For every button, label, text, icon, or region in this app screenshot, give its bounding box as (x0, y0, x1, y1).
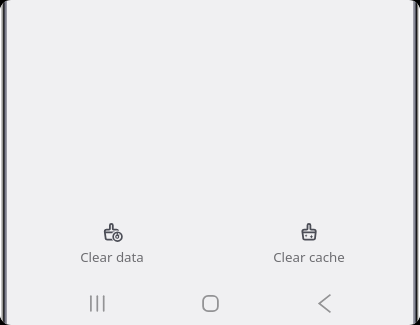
button[interactable]: Home (187, 288, 235, 320)
staticText: Clear data (52, 248, 172, 266)
button[interactable]: Back (301, 288, 349, 320)
staticText: Clear cache (249, 248, 369, 266)
button[interactable] (60, 214, 164, 266)
button[interactable]: Recents (73, 288, 121, 320)
button[interactable] (257, 214, 361, 266)
